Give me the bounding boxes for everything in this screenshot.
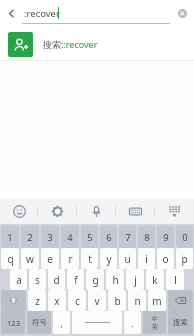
button[interactable]: p <box>176 248 193 269</box>
button[interactable]: . <box>124 311 141 334</box>
button[interactable]: s <box>29 269 46 290</box>
staticText: m <box>152 294 162 308</box>
staticText: :recover <box>24 7 60 20</box>
button[interactable]: a <box>10 269 27 290</box>
staticText: z <box>35 294 40 308</box>
button[interactable]: l <box>166 269 184 290</box>
staticText: p <box>181 252 188 266</box>
staticText: k <box>152 273 158 287</box>
staticText: 1 <box>7 231 13 244</box>
button[interactable]: j <box>126 269 144 290</box>
button[interactable]: 搜索::recover <box>0 27 194 61</box>
button[interactable]: :recover <box>22 0 170 27</box>
staticText: l <box>174 273 177 287</box>
button[interactable]: x <box>48 290 66 311</box>
staticText: 8 <box>144 231 150 244</box>
staticText: 搜索 <box>173 318 188 327</box>
button[interactable]: h <box>106 269 124 290</box>
button[interactable]: b <box>108 290 126 311</box>
button[interactable]: g <box>86 269 104 290</box>
staticText: 9 <box>163 231 169 244</box>
staticText: w <box>26 252 34 266</box>
staticText: i <box>145 252 148 266</box>
button[interactable]: k <box>146 269 164 290</box>
button[interactable]: 3 <box>41 226 59 248</box>
button[interactable]: r <box>61 248 79 269</box>
staticText: t <box>88 252 92 266</box>
button[interactable]: Keyboard layout <box>116 199 155 224</box>
button[interactable]: 4 <box>61 226 79 248</box>
button[interactable]: Shift <box>1 290 26 311</box>
staticText: 符号 <box>32 318 47 327</box>
button[interactable]: 5 <box>81 226 98 248</box>
staticText: j <box>134 273 137 287</box>
button[interactable]: 符号 <box>27 311 51 334</box>
button[interactable]: Space <box>72 311 122 334</box>
button[interactable]: Settings <box>38 199 77 224</box>
staticText: v <box>94 294 100 308</box>
button[interactable]: i <box>138 248 155 269</box>
button[interactable]: 6 <box>100 226 117 248</box>
button[interactable]: 9 <box>157 226 174 248</box>
staticText: 6 <box>106 231 112 244</box>
button[interactable]: Switch Chinese English <box>143 311 166 334</box>
button[interactable]: 2 <box>21 226 39 248</box>
button[interactable]: t <box>81 248 98 269</box>
staticText: q <box>7 252 14 266</box>
button[interactable]: q <box>1 248 19 269</box>
button[interactable]: o <box>157 248 174 269</box>
staticText: a <box>16 273 22 287</box>
staticText: 0 <box>182 231 188 244</box>
button[interactable]: 123 <box>1 311 25 334</box>
button[interactable]: d <box>48 269 65 290</box>
staticText: g <box>92 273 99 287</box>
staticText: e <box>47 252 53 266</box>
button[interactable]: Clear text <box>170 0 194 27</box>
staticText: f <box>74 273 78 287</box>
staticText: 3 <box>47 231 53 244</box>
staticText: o <box>162 252 169 266</box>
staticText: 英 <box>152 323 158 331</box>
button[interactable]: f <box>67 269 84 290</box>
staticText: u <box>124 252 131 266</box>
button[interactable]: Backspace <box>168 290 193 311</box>
staticText: c <box>75 294 80 308</box>
button[interactable]: Voice input <box>77 199 116 224</box>
button[interactable]: c <box>68 290 86 311</box>
button[interactable]: w <box>21 248 39 269</box>
button[interactable]: Hide keyboard <box>155 199 194 224</box>
staticText: y <box>106 252 112 266</box>
button[interactable]: , <box>53 311 70 334</box>
staticText: 中 <box>152 315 158 323</box>
staticText: 4 <box>67 231 73 244</box>
staticText: 7 <box>125 231 131 244</box>
button[interactable]: 0 <box>176 226 193 248</box>
staticText: s <box>35 273 40 287</box>
staticText: 2 <box>27 231 33 244</box>
button[interactable]: m <box>148 290 166 311</box>
button[interactable]: n <box>128 290 146 311</box>
staticText: 5 <box>87 231 93 244</box>
button[interactable]: 搜索 <box>168 311 193 334</box>
button[interactable]: y <box>100 248 117 269</box>
staticText: x <box>54 294 60 308</box>
staticText: . <box>131 317 134 329</box>
button[interactable]: 7 <box>119 226 136 248</box>
staticText: d <box>53 273 60 287</box>
staticText: r <box>68 252 73 266</box>
button[interactable]: 8 <box>138 226 155 248</box>
staticText: b <box>114 294 121 308</box>
staticText: n <box>134 294 141 308</box>
button[interactable]: z <box>28 290 46 311</box>
staticText: h <box>112 273 119 287</box>
button[interactable]: u <box>119 248 136 269</box>
button[interactable]: v <box>88 290 106 311</box>
staticText: , <box>60 317 63 329</box>
button[interactable]: e <box>41 248 59 269</box>
button[interactable]: Back <box>0 0 22 27</box>
button[interactable]: Emoji <box>0 199 38 224</box>
staticText: 123 <box>7 318 20 328</box>
staticText: 搜索::recover <box>43 38 98 50</box>
button[interactable]: 1 <box>1 226 19 248</box>
